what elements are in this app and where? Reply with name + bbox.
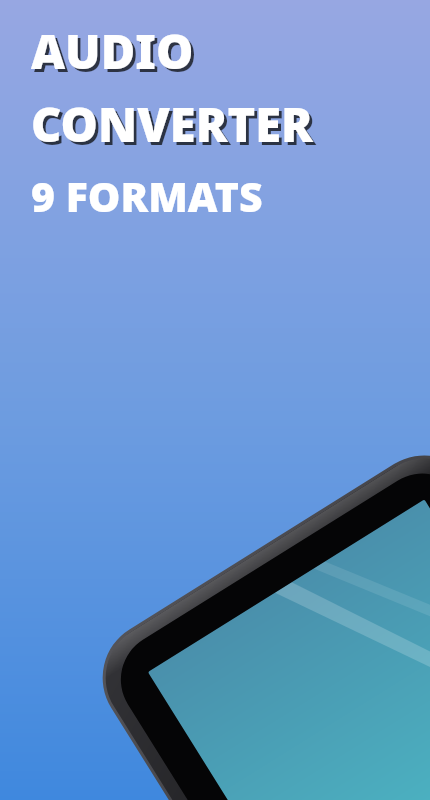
staticText: AUDIO — [31, 19, 194, 83]
staticText: CONVERTER — [34, 95, 316, 159]
staticText: CONVERTER — [31, 92, 313, 156]
staticText: AUDIO — [34, 22, 197, 86]
staticText: 9 FORMATS — [31, 168, 263, 224]
button[interactable]: AUDIO — [31, 19, 430, 800]
